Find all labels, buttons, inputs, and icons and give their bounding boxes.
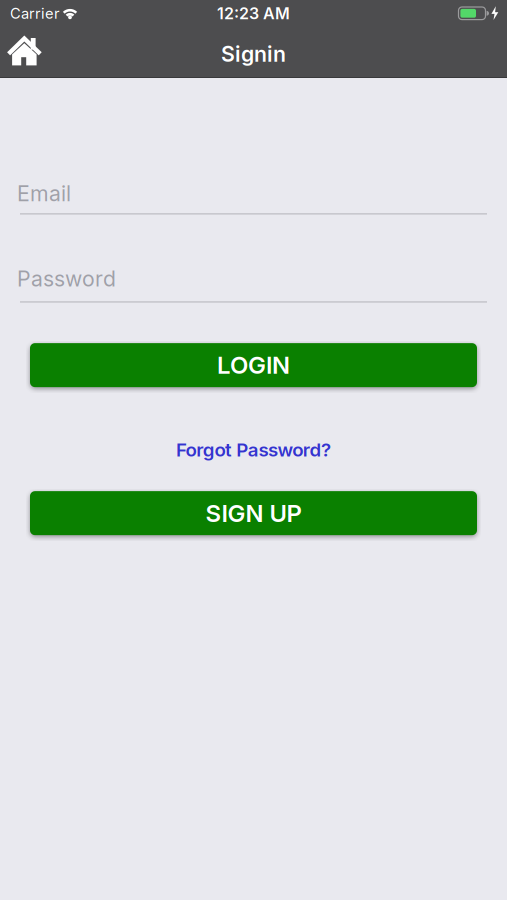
staticText: Email xyxy=(17,181,71,206)
staticText: 12:23 AM xyxy=(217,4,290,23)
staticText: Password xyxy=(17,266,116,291)
staticText: Forgot Password? xyxy=(176,439,331,461)
staticText: Carrier xyxy=(10,5,60,22)
staticText: Signin xyxy=(221,41,286,67)
staticText: SIGN UP xyxy=(205,499,301,527)
staticText: LOGIN xyxy=(217,351,290,379)
